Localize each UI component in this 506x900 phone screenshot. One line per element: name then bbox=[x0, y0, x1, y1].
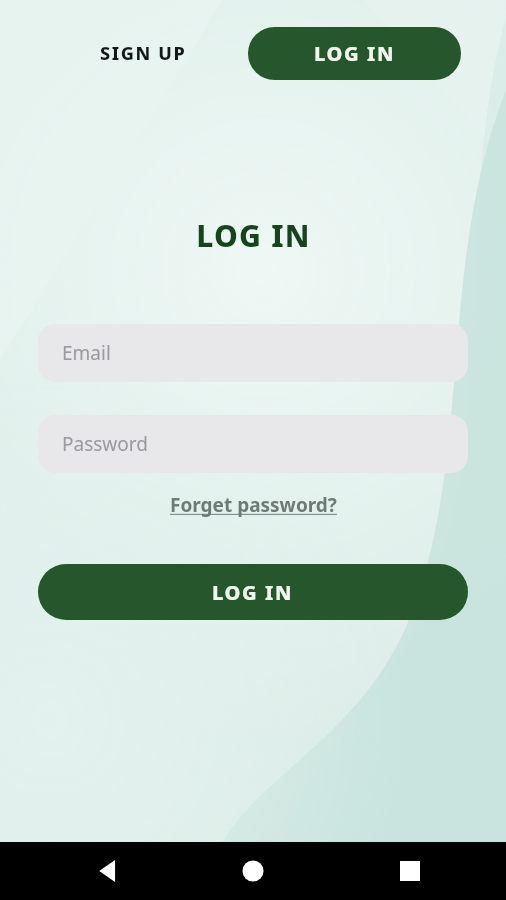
staticText: LOG IN bbox=[212, 579, 294, 606]
staticText: SIGN UP bbox=[100, 41, 187, 66]
button[interactable]: Back bbox=[82, 845, 134, 897]
button[interactable]: LOG IN bbox=[38, 564, 468, 620]
staticText: Password bbox=[62, 431, 148, 457]
button[interactable]: Email bbox=[38, 324, 468, 382]
button[interactable]: SIGN UP bbox=[98, 35, 189, 72]
button[interactable]: Recent apps bbox=[384, 845, 436, 897]
button[interactable]: Forget password? bbox=[166, 488, 341, 522]
button[interactable]: LOG IN bbox=[248, 27, 461, 80]
staticText: LOG IN bbox=[196, 215, 311, 256]
staticText: LOG IN bbox=[314, 40, 396, 67]
button[interactable]: Password bbox=[38, 415, 468, 473]
button[interactable]: Home bbox=[227, 845, 279, 897]
staticText: Forget password? bbox=[170, 492, 337, 518]
staticText: Email bbox=[62, 340, 111, 366]
